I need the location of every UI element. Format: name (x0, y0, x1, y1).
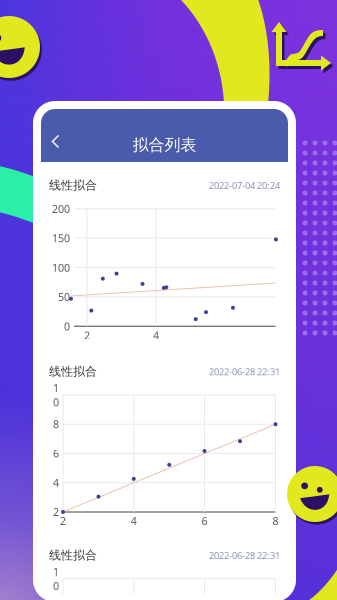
staticText: 2022-07-04 20:24 (209, 179, 280, 192)
staticText: 8 (272, 514, 278, 528)
button[interactable]: 线性拟合 (49, 178, 280, 344)
staticText: 50 (58, 290, 70, 304)
button[interactable]: 线性拟合 (49, 364, 280, 530)
button[interactable]: Back (43, 128, 77, 162)
staticText: 4 (131, 514, 137, 528)
staticText: 2 (60, 514, 66, 528)
staticText: 200 (52, 202, 70, 216)
staticText: 100 (52, 260, 70, 275)
staticText: 2 (53, 505, 59, 519)
staticText: 10 (53, 381, 59, 409)
staticText: 150 (52, 231, 70, 245)
staticText: 4 (53, 476, 59, 490)
staticText: 10 (53, 565, 59, 593)
staticText: 8 (53, 417, 59, 431)
staticText: 线性拟合 (49, 548, 97, 563)
staticText: 4 (153, 328, 159, 342)
staticText: 6 (201, 514, 207, 528)
staticText: 线性拟合 (49, 364, 97, 379)
staticText: 6 (53, 446, 59, 461)
staticText: 2022-06-28 22:31 (209, 549, 280, 562)
staticText: 0 (64, 319, 70, 333)
staticText: 拟合列表 (132, 135, 196, 155)
staticText: 2022-06-28 22:31 (209, 365, 280, 378)
button[interactable]: 线性拟合 (49, 548, 280, 600)
staticText: 线性拟合 (49, 178, 97, 193)
staticText: 2 (84, 328, 90, 342)
